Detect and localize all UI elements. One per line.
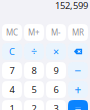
button[interactable]: 4 [2, 81, 22, 98]
staticText: 5 [31, 83, 36, 96]
button[interactable]: M+ [24, 24, 44, 41]
button[interactable]: Delete [68, 43, 88, 60]
button[interactable]: M- [46, 24, 66, 41]
button[interactable]: 5 [24, 81, 44, 98]
staticText: × [53, 44, 59, 59]
button[interactable]: 6 [46, 81, 66, 98]
staticText: + [74, 81, 81, 97]
button[interactable]: = [68, 100, 88, 110]
button[interactable]: 1 [2, 100, 22, 110]
button[interactable]: MR [68, 24, 88, 41]
button[interactable]: + [68, 81, 88, 98]
staticText: 1 [9, 102, 14, 110]
staticText: 152,599 [55, 0, 88, 12]
staticText: 7 [9, 64, 14, 77]
staticText: MC [6, 27, 18, 38]
button[interactable]: 7 [2, 62, 22, 79]
staticText: 4 [9, 83, 14, 96]
button[interactable]: C [2, 43, 22, 60]
button[interactable]: 8 [24, 62, 44, 79]
staticText: 2 [31, 102, 36, 110]
staticText: 6 [53, 83, 58, 96]
button[interactable]: − [68, 62, 88, 79]
staticText: ÷ [31, 44, 37, 59]
button[interactable]: 2 [24, 100, 44, 110]
staticText: 9 [53, 64, 58, 77]
staticText: M+ [28, 27, 40, 38]
staticText: M- [51, 27, 61, 38]
staticText: − [74, 62, 81, 78]
button[interactable]: 3 [46, 100, 66, 110]
staticText: MR [72, 27, 84, 38]
staticText: = [74, 100, 81, 110]
staticText: C [9, 45, 15, 58]
staticText: 8 [31, 64, 36, 77]
button[interactable]: MC [2, 24, 22, 41]
button[interactable]: ÷ [24, 43, 44, 60]
button[interactable]: 9 [46, 62, 66, 79]
button[interactable]: × [46, 43, 66, 60]
staticText: 3 [53, 102, 58, 110]
